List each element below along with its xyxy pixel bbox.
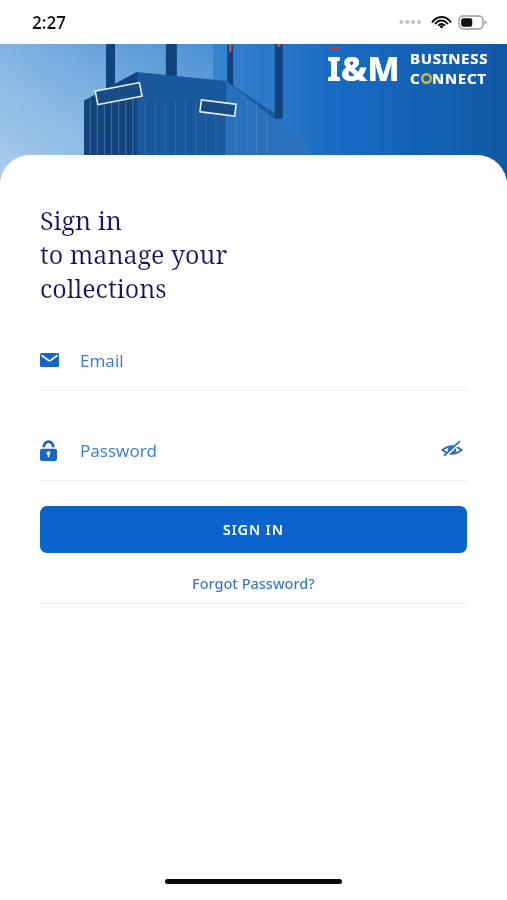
button[interactable]: Forgot Password? [40,568,467,598]
staticText: Email [80,349,124,372]
staticText: Password [80,439,157,462]
staticText: Sign in [40,203,122,237]
staticText: 2:27 [32,11,66,34]
staticText: I&M [327,45,400,91]
staticText: NNECT [432,68,487,88]
staticText: C [410,68,421,88]
staticText: to manage your [40,237,228,271]
staticText: SIGN IN [223,520,284,539]
staticText: collections [40,271,167,305]
button[interactable]: SIGN IN [40,506,467,553]
staticText: BUSINESS [410,48,489,68]
button[interactable]: Email [40,343,467,391]
button[interactable]: Password [40,433,467,481]
button[interactable]: Show password [437,435,467,465]
staticText: Forgot Password? [192,573,315,593]
